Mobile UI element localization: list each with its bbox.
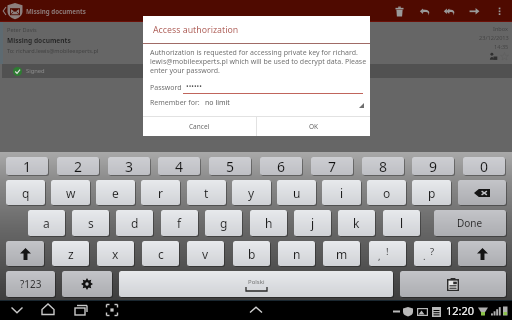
button[interactable]: Recents bbox=[66, 300, 94, 320]
button[interactable]: Back bbox=[3, 300, 31, 320]
button[interactable]: h bbox=[250, 210, 287, 236]
staticText: 2 bbox=[74, 157, 83, 175]
button[interactable]: Period bbox=[414, 241, 451, 266]
button[interactable]: Reply bbox=[412, 0, 437, 22]
staticText: Signed bbox=[26, 67, 45, 75]
staticText: r bbox=[158, 185, 163, 201]
button[interactable]: t bbox=[187, 180, 226, 205]
staticText: Inbox bbox=[493, 25, 509, 33]
button[interactable]: 9 bbox=[412, 157, 454, 175]
staticText: •••••• bbox=[186, 82, 202, 92]
button[interactable]: n bbox=[278, 241, 315, 266]
button[interactable]: s bbox=[72, 210, 109, 236]
staticText: 12:20 bbox=[446, 303, 475, 318]
button[interactable]: More options bbox=[487, 0, 512, 22]
button[interactable]: y bbox=[232, 180, 271, 205]
staticText: m bbox=[336, 246, 348, 262]
button[interactable]: Reply all bbox=[437, 0, 462, 22]
staticText: 6 bbox=[277, 157, 286, 175]
staticText: t bbox=[204, 185, 209, 201]
button[interactable]: b bbox=[233, 241, 270, 266]
button[interactable]: m bbox=[323, 241, 360, 266]
button[interactable]: Shift bbox=[458, 241, 506, 266]
button[interactable]: x bbox=[97, 241, 134, 266]
button[interactable]: 2 bbox=[57, 157, 99, 175]
button[interactable]: j bbox=[294, 210, 331, 236]
staticText: d bbox=[131, 215, 139, 231]
staticText: . bbox=[423, 250, 426, 263]
staticText: Password bbox=[150, 83, 182, 93]
button[interactable]: Comma bbox=[369, 241, 406, 266]
button[interactable]: c bbox=[142, 241, 179, 266]
button[interactable]: o bbox=[367, 180, 406, 205]
button[interactable]: 5 bbox=[209, 157, 251, 175]
button[interactable]: q bbox=[6, 180, 45, 205]
button[interactable]: 7 bbox=[311, 157, 353, 175]
staticText: g bbox=[220, 215, 228, 231]
button[interactable]: d bbox=[116, 210, 153, 236]
staticText: 23/12/2013 bbox=[479, 34, 509, 42]
staticText: ? bbox=[430, 245, 435, 258]
button[interactable]: 8 bbox=[362, 157, 404, 175]
staticText: 4 bbox=[175, 157, 184, 175]
staticText: s bbox=[88, 215, 94, 231]
button[interactable]: 1 bbox=[6, 157, 48, 175]
button[interactable]: Home bbox=[34, 300, 62, 320]
button[interactable]: a bbox=[28, 210, 65, 236]
button[interactable]: Done bbox=[434, 210, 506, 236]
button[interactable]: p bbox=[412, 180, 451, 205]
staticText: k bbox=[353, 215, 360, 231]
button[interactable]: z bbox=[52, 241, 89, 266]
staticText: h bbox=[265, 215, 273, 231]
button[interactable]: Backspace bbox=[458, 180, 506, 205]
button[interactable]: Fullscreen bbox=[98, 300, 126, 320]
button[interactable]: u bbox=[277, 180, 316, 205]
staticText: Cancel bbox=[189, 122, 210, 131]
staticText: c bbox=[158, 246, 164, 262]
button[interactable]: Clipboard bbox=[400, 271, 506, 297]
staticText: 5 bbox=[226, 157, 235, 175]
button[interactable]: v bbox=[187, 241, 224, 266]
staticText: x bbox=[112, 246, 119, 262]
staticText: 9 bbox=[429, 157, 438, 175]
staticText: j bbox=[311, 215, 315, 231]
button[interactable]: Forward bbox=[462, 0, 487, 22]
button[interactable]: Space bbox=[119, 271, 393, 297]
button[interactable]: w bbox=[51, 180, 90, 205]
staticText: 1 bbox=[23, 157, 32, 175]
button[interactable]: OK bbox=[257, 117, 370, 136]
button[interactable]: r bbox=[141, 180, 180, 205]
staticText: 7 bbox=[328, 157, 337, 175]
button[interactable]: Shift bbox=[6, 241, 44, 266]
button[interactable]: Expand bbox=[242, 300, 270, 320]
button[interactable]: 6 bbox=[260, 157, 302, 175]
button[interactable]: 3 bbox=[108, 157, 150, 175]
button[interactable]: e bbox=[96, 180, 135, 205]
staticText: v bbox=[202, 246, 209, 262]
staticText: q bbox=[22, 185, 30, 201]
staticText: ?123 bbox=[20, 277, 42, 291]
staticText: Remember for: bbox=[150, 98, 200, 108]
staticText: 8 bbox=[379, 157, 388, 175]
staticText: n bbox=[293, 246, 301, 262]
staticText: Missing documents bbox=[26, 7, 86, 15]
button[interactable]: f bbox=[161, 210, 198, 236]
staticText: , bbox=[378, 250, 381, 263]
staticText: o bbox=[383, 185, 391, 201]
staticText: Authorization is requested for accessing… bbox=[150, 48, 367, 75]
button[interactable]: l bbox=[383, 210, 420, 236]
staticText: w bbox=[66, 185, 76, 201]
button[interactable]: Settings bbox=[62, 271, 112, 297]
button[interactable]: Delete bbox=[387, 0, 412, 22]
button[interactable]: 0 bbox=[463, 157, 505, 175]
staticText: To: richard.lewis@mobileexperts.pl bbox=[7, 47, 99, 55]
staticText: 3 bbox=[125, 157, 134, 175]
button[interactable]: g bbox=[205, 210, 242, 236]
button[interactable]: i bbox=[322, 180, 361, 205]
button[interactable]: 4 bbox=[158, 157, 200, 175]
staticText: e bbox=[112, 185, 119, 201]
button[interactable]: Cancel bbox=[143, 117, 256, 136]
button[interactable]: Back bbox=[0, 0, 26, 22]
button[interactable]: ?123 bbox=[6, 271, 55, 297]
button[interactable]: k bbox=[338, 210, 375, 236]
